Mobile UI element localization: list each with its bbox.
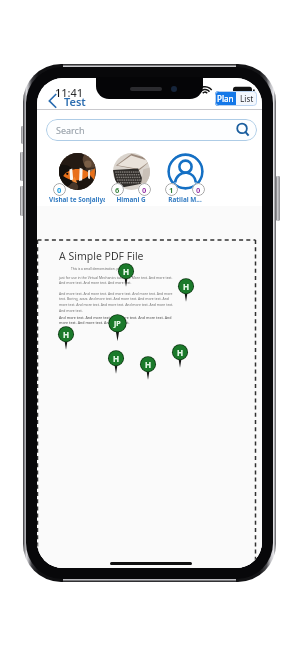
staticText: And more text. And more text. And more t…: [59, 315, 176, 325]
staticText: H: [183, 281, 190, 292]
staticText: JP: [114, 319, 121, 329]
staticText: Himani G: [103, 195, 159, 204]
button[interactable]: Plan: [215, 91, 236, 106]
button[interactable]: List: [236, 91, 257, 106]
staticText: just for use in the Virtual Mechanics tu…: [59, 275, 176, 285]
button[interactable]: 0: [49, 153, 105, 204]
staticText: H: [113, 353, 120, 364]
staticText: A Simple PDF File: [59, 249, 144, 263]
staticText: H: [63, 329, 70, 340]
staticText: And more text. And more text. And more t…: [59, 291, 176, 313]
button[interactable]: Marker H: [139, 355, 157, 387]
button[interactable]: Marker H: [57, 325, 75, 357]
other: Search: [235, 122, 251, 138]
staticText: Ratilal M...: [157, 195, 213, 204]
staticText: Search: [56, 124, 85, 136]
button[interactable]: Test: [64, 94, 86, 109]
staticText: H: [177, 347, 184, 358]
staticText: H: [123, 266, 130, 277]
button[interactable]: Marker H: [171, 343, 189, 375]
staticText: 11:41: [55, 85, 84, 100]
staticText: 1: [169, 185, 174, 195]
staticText: This is a small demonstration .pdf file …: [71, 267, 129, 271]
staticText: Plan: [217, 93, 234, 104]
button[interactable]: 1: [157, 153, 213, 204]
button[interactable]: Marker H: [177, 277, 195, 309]
staticText: H: [145, 359, 152, 370]
staticText: 6: [115, 185, 120, 195]
button[interactable]: Marker H: [117, 262, 135, 294]
staticText: List: [240, 93, 254, 104]
button[interactable]: Search: [46, 119, 257, 141]
button[interactable]: Marker JP: [107, 313, 128, 348]
button[interactable]: Back: [45, 91, 59, 111]
staticText: Vishal te Sonjaliya: [49, 195, 105, 204]
button[interactable]: 6: [103, 153, 159, 204]
button[interactable]: Marker H: [107, 349, 125, 381]
staticText: 0: [142, 185, 147, 195]
staticText: 0: [57, 185, 62, 195]
staticText: 0: [196, 185, 201, 195]
